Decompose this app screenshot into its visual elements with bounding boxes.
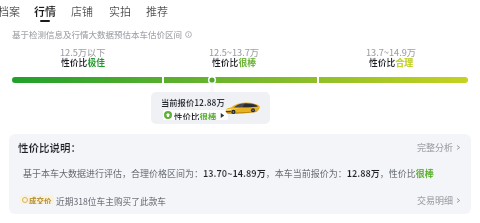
staticText: 性价比很棒 [212,56,256,69]
button[interactable]: 实拍 [108,0,131,23]
button[interactable]: 交易明细 [417,194,463,206]
button[interactable]: 档案 [0,0,20,23]
button[interactable]: 行情 [33,0,56,23]
staticText: 档案 [0,3,20,19]
button[interactable]: 当前报价12.88万 [151,92,270,124]
staticText: 推荐 [146,3,168,19]
staticText: 实拍 [109,3,131,19]
staticText: 完整分析 [417,141,454,153]
button[interactable]: 推荐 [145,0,168,23]
button[interactable]: 店铺 [70,0,93,23]
staticText: 交易明细 [417,194,454,206]
button[interactable]: 完整分析 [417,141,463,153]
staticText: 店铺 [71,3,93,19]
staticText: 行情 [34,3,56,19]
staticText: 近期318位车主购买了此款车 [56,195,167,208]
staticText: 12.5万以下 [60,45,106,58]
staticText: 当前报价12.88万 [161,96,225,108]
staticText: 基于检测信息及行情大数据预估本车估价区间 [12,28,183,40]
staticText: 性价比极佳 [61,56,105,69]
staticText: 性价比很棒 [174,110,217,120]
staticText: 成交价 [29,195,52,204]
staticText: 12.5~13.7万 [209,45,259,58]
staticText: 性价比说明： [18,140,81,155]
staticText: 13.7~14.9万 [366,45,416,58]
staticText: 基于本车大数据进行评估，合理价格区间为：13.70~14.89万，本车当前报价为… [23,167,434,180]
staticText: 性价比合理 [369,56,413,69]
